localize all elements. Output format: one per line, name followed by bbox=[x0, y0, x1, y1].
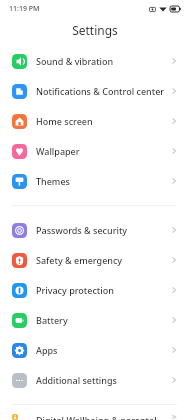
staticText: Notifications & Control center bbox=[36, 85, 165, 97]
button[interactable]: Digital Wellbeing & parental bbox=[0, 414, 189, 420]
button[interactable]: Battery bbox=[0, 305, 189, 335]
staticText: Battery bbox=[36, 314, 68, 326]
other: Open bbox=[169, 375, 179, 385]
other: Open bbox=[169, 315, 179, 325]
button[interactable]: Themes bbox=[0, 166, 189, 196]
staticText: Safety & emergency bbox=[36, 254, 123, 266]
other: Open bbox=[169, 86, 179, 96]
button[interactable]: Additional settings bbox=[0, 365, 189, 395]
staticText: Settings bbox=[72, 22, 118, 38]
staticText: Apps bbox=[36, 344, 58, 356]
other: Open bbox=[169, 176, 179, 186]
button[interactable]: Privacy protection bbox=[0, 275, 189, 305]
button[interactable]: Apps bbox=[0, 335, 189, 365]
button[interactable]: Home screen bbox=[0, 106, 189, 136]
other: Open bbox=[169, 146, 179, 156]
staticText: Additional settings bbox=[36, 374, 117, 386]
button[interactable]: Wallpaper bbox=[0, 136, 189, 166]
other: Open bbox=[169, 414, 179, 420]
button[interactable]: Sound & vibration bbox=[0, 46, 189, 76]
staticText: Themes bbox=[36, 175, 70, 187]
button[interactable]: Passwords & security bbox=[0, 215, 189, 245]
other: Open bbox=[169, 116, 179, 126]
other: Open bbox=[169, 56, 179, 66]
staticText: Privacy protection bbox=[36, 284, 114, 296]
button[interactable]: Safety & emergency bbox=[0, 245, 189, 275]
staticText: Sound & vibration bbox=[36, 55, 114, 67]
button[interactable]: Notifications & Control center bbox=[0, 76, 189, 106]
other: Open bbox=[169, 285, 179, 295]
staticText: Wallpaper bbox=[36, 145, 80, 157]
staticText: Passwords & security bbox=[36, 224, 128, 236]
other: Open bbox=[169, 345, 179, 355]
other: Open bbox=[169, 255, 179, 265]
other: Open bbox=[169, 225, 179, 235]
staticText: Digital Wellbeing & parental bbox=[36, 414, 157, 420]
staticText: 11:19 PM bbox=[9, 4, 40, 14]
staticText: Home screen bbox=[36, 115, 93, 127]
